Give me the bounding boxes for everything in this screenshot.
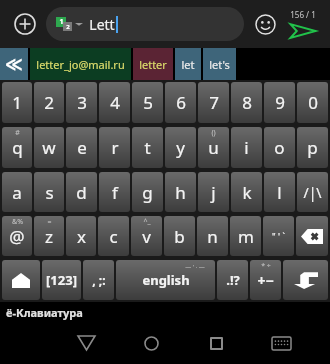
staticText: h bbox=[175, 181, 186, 204]
button[interactable]: /|\ bbox=[297, 172, 328, 212]
staticText: f bbox=[112, 181, 118, 204]
staticText: 8 bbox=[242, 91, 252, 114]
staticText: english bbox=[142, 271, 190, 289]
button[interactable]: Previous suggestions bbox=[0, 48, 28, 80]
button[interactable]: Switch keyboard bbox=[249, 322, 314, 364]
button[interactable]: 0 bbox=[297, 82, 328, 123]
staticText: [123] bbox=[46, 271, 77, 289]
staticText: * ÷ bbox=[261, 261, 271, 271]
staticText: m bbox=[238, 225, 254, 248]
button[interactable]: 8 bbox=[231, 82, 262, 123]
button[interactable]: y bbox=[165, 127, 196, 168]
staticText: 3 bbox=[77, 91, 87, 114]
staticText: letter_jo@mail.ru bbox=[36, 57, 125, 72]
button[interactable]: let's bbox=[203, 48, 236, 80]
button[interactable]: 7 bbox=[198, 82, 229, 123]
staticText: 6 bbox=[176, 91, 186, 114]
button[interactable]: p bbox=[297, 127, 328, 168]
button[interactable]: Recent apps bbox=[184, 322, 249, 364]
staticText: let bbox=[181, 57, 195, 72]
button[interactable]: 1 bbox=[2, 82, 32, 123]
staticText: x bbox=[77, 225, 86, 248]
staticText: a bbox=[12, 181, 22, 204]
button[interactable]: Back bbox=[54, 322, 119, 364]
staticText: () bbox=[211, 128, 216, 138]
button[interactable]: h bbox=[165, 172, 196, 212]
staticText: q bbox=[12, 136, 23, 159]
button[interactable]: i bbox=[231, 127, 262, 168]
button[interactable] bbox=[283, 260, 328, 300]
button[interactable]: letter_jo@mail.ru bbox=[30, 48, 131, 80]
button[interactable]: 6 bbox=[165, 82, 196, 123]
staticText: letter bbox=[139, 57, 167, 72]
button[interactable]: n bbox=[197, 216, 228, 256]
staticText: 7 bbox=[209, 91, 219, 114]
button[interactable]: 4 bbox=[99, 82, 130, 123]
button[interactable]: Add attachment bbox=[8, 7, 42, 41]
staticText: /|\ bbox=[303, 183, 322, 202]
staticText: .!? bbox=[226, 271, 240, 289]
button[interactable]: Home bbox=[119, 322, 184, 364]
button[interactable]: 3 bbox=[66, 82, 97, 123]
button[interactable]: @ bbox=[2, 216, 32, 256]
button[interactable]: x bbox=[66, 216, 96, 256]
button[interactable]: Emoji bbox=[250, 9, 280, 39]
staticText: ≪ bbox=[5, 54, 23, 74]
button[interactable]: letter bbox=[133, 48, 173, 80]
staticText: 156 / 1 bbox=[290, 9, 316, 20]
button[interactable]: d bbox=[66, 172, 97, 212]
button[interactable]: m bbox=[230, 216, 261, 256]
button[interactable] bbox=[296, 216, 328, 256]
button[interactable]: o bbox=[264, 127, 295, 168]
button[interactable]: c bbox=[98, 216, 129, 256]
staticText: Lett bbox=[89, 15, 115, 34]
staticText: c bbox=[109, 225, 118, 248]
staticText: 2 bbox=[66, 23, 70, 31]
button[interactable]: s bbox=[34, 172, 64, 212]
staticText: w bbox=[42, 136, 56, 159]
button[interactable]: 2 bbox=[34, 82, 64, 123]
button[interactable]: " ' ` bbox=[263, 216, 294, 256]
button[interactable]: k bbox=[231, 172, 262, 212]
button[interactable]: v bbox=[131, 216, 162, 256]
staticText: 0 bbox=[308, 91, 318, 114]
staticText: g bbox=[142, 181, 153, 204]
button[interactable]: z bbox=[34, 216, 64, 256]
button[interactable]: e bbox=[66, 127, 97, 168]
button[interactable]: 9 bbox=[264, 82, 295, 123]
button[interactable]: 5 bbox=[132, 82, 163, 123]
button[interactable]: Send bbox=[280, 0, 326, 48]
staticText: o bbox=[274, 136, 285, 159]
staticText: b bbox=[174, 225, 185, 248]
button[interactable]: , ;: bbox=[83, 260, 114, 300]
button[interactable]: [123] bbox=[42, 260, 81, 300]
button[interactable]: t bbox=[132, 127, 163, 168]
staticText: s bbox=[45, 181, 54, 204]
button[interactable]: let bbox=[175, 48, 201, 80]
staticText: , ;: bbox=[92, 272, 106, 288]
button[interactable]: j bbox=[198, 172, 229, 212]
staticText: " ' ` bbox=[272, 230, 285, 242]
button[interactable]: r bbox=[99, 127, 130, 168]
staticText: ^_ bbox=[143, 217, 151, 227]
staticText: 5 bbox=[143, 91, 153, 114]
staticText: v bbox=[142, 225, 151, 248]
button[interactable]: l bbox=[264, 172, 295, 212]
button[interactable]: a bbox=[2, 172, 32, 212]
button[interactable]: w bbox=[34, 127, 64, 168]
button[interactable]: g bbox=[132, 172, 163, 212]
button[interactable]: +− bbox=[250, 260, 281, 300]
staticText: i bbox=[244, 136, 249, 159]
staticText: 4 bbox=[110, 91, 120, 114]
button[interactable]: english bbox=[116, 260, 215, 300]
button[interactable]: b bbox=[164, 216, 195, 256]
staticText: l bbox=[277, 181, 282, 204]
button[interactable]: .!? bbox=[217, 260, 248, 300]
staticText: r bbox=[111, 136, 119, 159]
button[interactable]: 1 bbox=[46, 7, 244, 41]
button[interactable]: q bbox=[2, 127, 32, 168]
button[interactable] bbox=[2, 260, 40, 300]
button[interactable]: f bbox=[99, 172, 130, 212]
button[interactable]: u bbox=[198, 127, 229, 168]
staticText: y bbox=[176, 136, 185, 159]
